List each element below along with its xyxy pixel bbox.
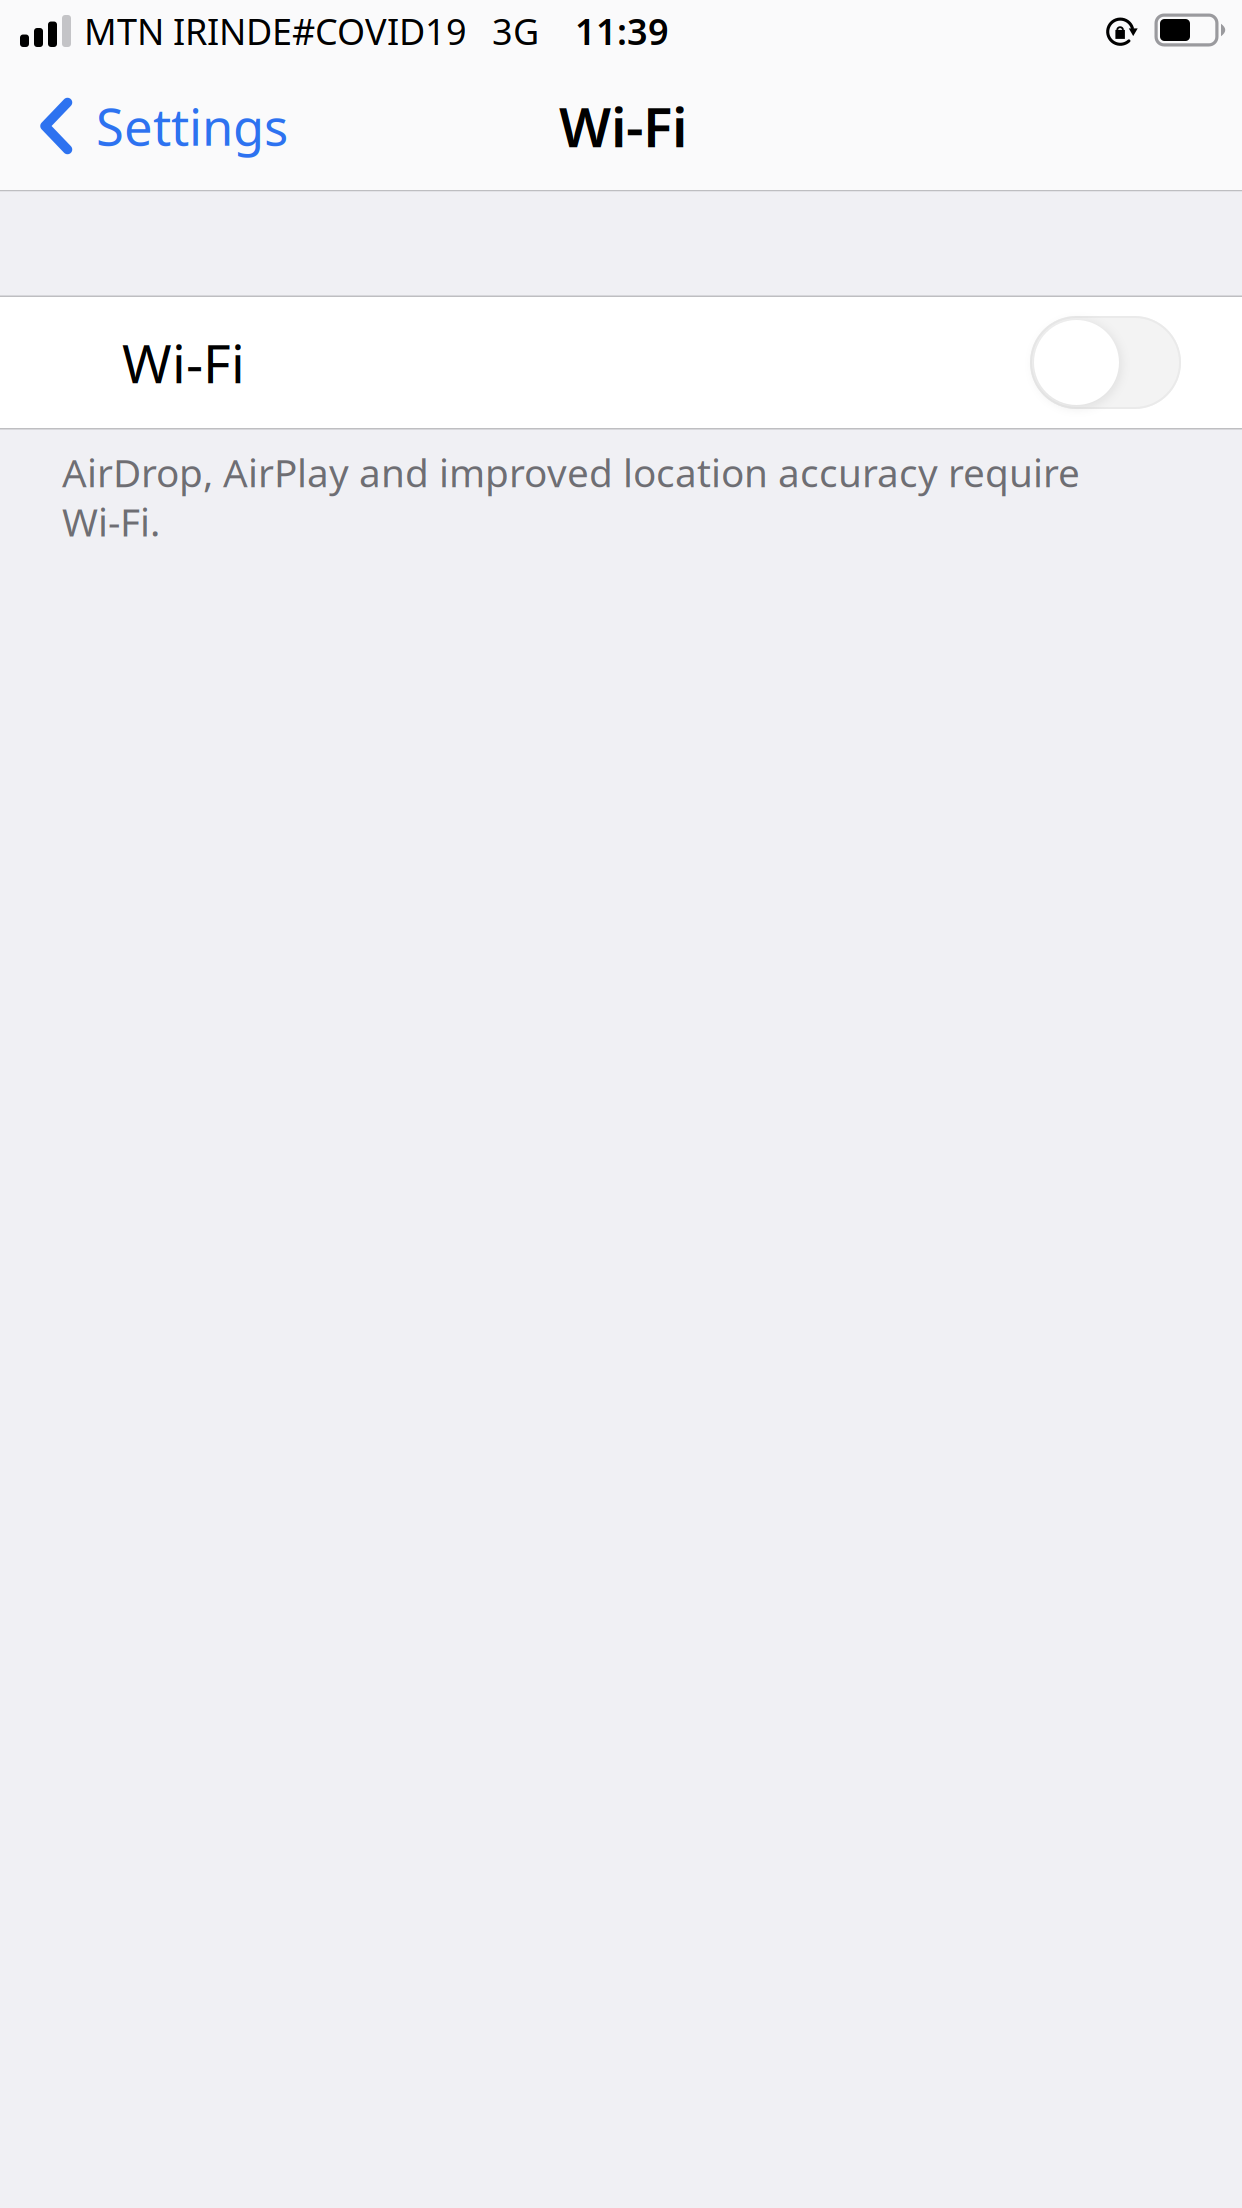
- staticText: Wi-Fi: [559, 90, 687, 162]
- staticText: MTN IRINDE#COVID19: [84, 7, 467, 55]
- staticText: 3G: [492, 7, 539, 55]
- staticText: AirDrop, AirPlay and improved location a…: [62, 446, 1080, 547]
- button[interactable]: Back to Settings: [0, 62, 312, 190]
- staticText: 11:39: [575, 7, 669, 55]
- staticText: Wi-Fi: [122, 327, 245, 398]
- button[interactable]: Wi-Fi: [0, 297, 1242, 428]
- staticText: Settings: [96, 92, 288, 160]
